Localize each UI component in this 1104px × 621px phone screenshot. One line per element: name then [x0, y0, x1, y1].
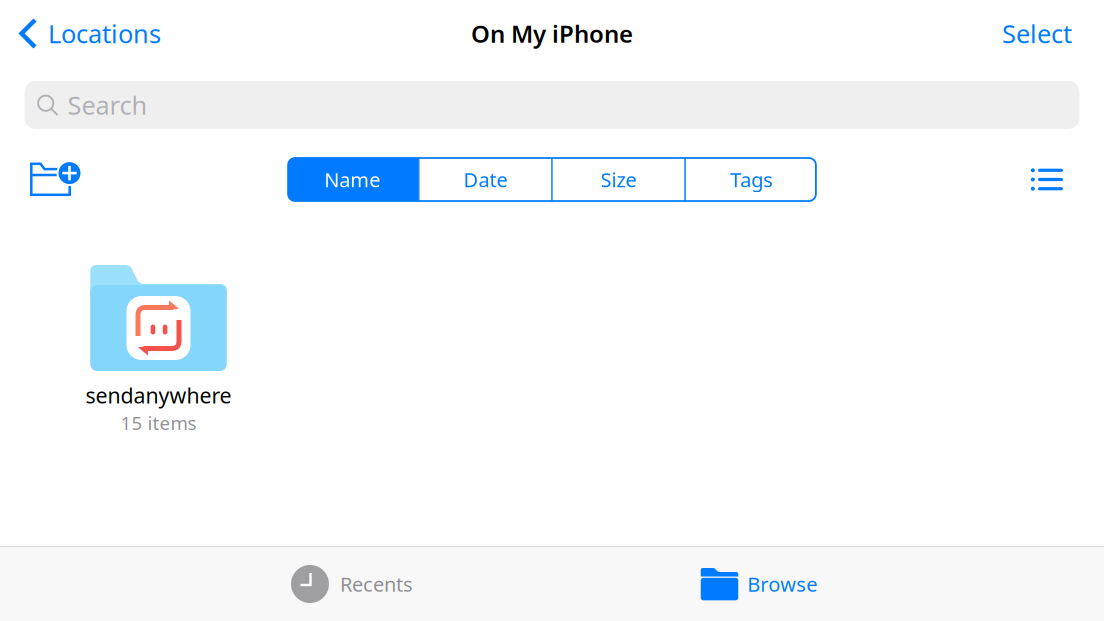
button[interactable]: Select [986, 0, 1088, 67]
button[interactable]: sendanywhere [71, 265, 246, 435]
staticText: Locations [48, 17, 161, 50]
staticText: Recents [340, 571, 413, 597]
staticText: Tags [730, 166, 773, 193]
button[interactable]: New Folder [30, 162, 83, 196]
button[interactable]: List View [1031, 169, 1063, 189]
staticText: Size [600, 166, 636, 193]
staticText: 15 items [120, 410, 196, 435]
button[interactable]: Search [24, 81, 1079, 129]
button[interactable]: Browse [619, 547, 899, 621]
button[interactable]: Recents [212, 547, 492, 621]
button[interactable]: Name [287, 158, 418, 201]
staticText: Date [463, 166, 507, 193]
staticText: On My iPhone [471, 18, 633, 49]
staticText: Search [67, 88, 147, 122]
staticText: Browse [747, 571, 817, 597]
staticText: Name [324, 166, 380, 193]
staticText: Select [1002, 17, 1072, 50]
button[interactable]: Locations [0, 0, 173, 67]
staticText: sendanywhere [85, 381, 231, 409]
button[interactable]: Tags [686, 158, 817, 201]
button[interactable]: Date [420, 158, 551, 201]
button[interactable]: Size [553, 158, 684, 201]
